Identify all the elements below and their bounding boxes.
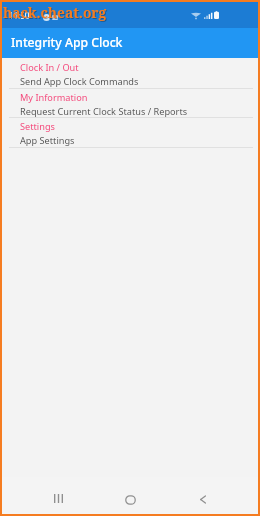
staticText: Clock In / Out: [20, 61, 79, 74]
button[interactable]: My Information: [2, 89, 258, 117]
staticText: My Information: [20, 91, 88, 104]
staticText: hack.cheat.org: [4, 4, 108, 23]
button[interactable]: Recents: [54, 494, 88, 516]
button[interactable]: Settings: [2, 118, 258, 147]
button[interactable]: Home: [125, 495, 159, 516]
staticText: Integrity App Clock: [11, 34, 123, 51]
button[interactable]: Back: [200, 495, 234, 516]
staticText: App Settings: [20, 134, 75, 147]
staticText: hack.cheat.org: [3, 3, 107, 22]
staticText: Request Current Clock Status / Reports: [20, 105, 188, 117]
button[interactable]: Clock In / Out: [2, 58, 258, 88]
staticText: Send App Clock Commands: [20, 75, 139, 88]
staticText: 11:50: [9, 10, 30, 21]
staticText: Settings: [20, 120, 55, 133]
